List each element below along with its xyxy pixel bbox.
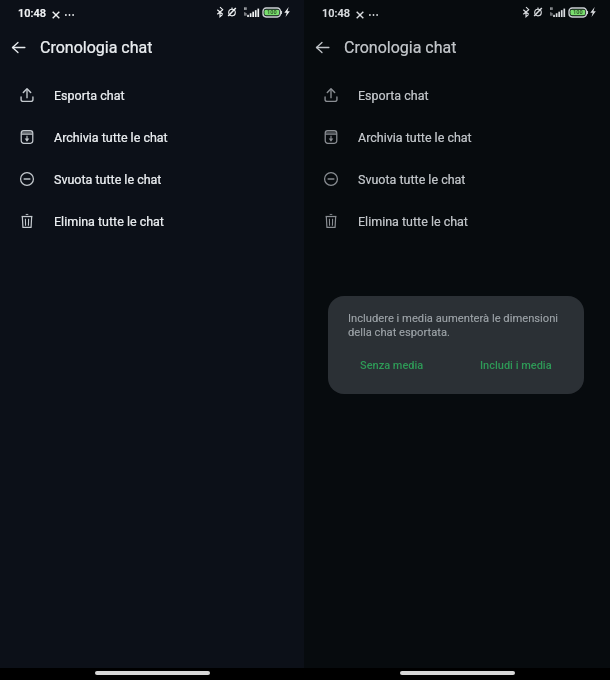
button[interactable]: Includi i media xyxy=(472,354,560,377)
button[interactable]: Senza media xyxy=(352,354,432,377)
staticText: Archivia tutte le chat xyxy=(54,130,168,145)
staticText: 100 xyxy=(267,9,277,16)
button[interactable]: Archivia tutte le chat xyxy=(0,116,304,158)
staticText: Svuota tutte le chat xyxy=(358,172,466,187)
button[interactable]: Elimina tutte le chat xyxy=(304,200,610,242)
staticText: Elimina tutte le chat xyxy=(54,214,164,229)
staticText: Senza media xyxy=(360,359,424,372)
button[interactable]: Svuota tutte le chat xyxy=(304,158,610,200)
staticText: Esporta chat xyxy=(54,88,125,103)
staticText: Elimina tutte le chat xyxy=(358,214,468,229)
button[interactable]: Archivia tutte le chat xyxy=(304,116,610,158)
staticText: Includi i media xyxy=(480,359,552,372)
button[interactable]: Svuota tutte le chat xyxy=(0,158,304,200)
staticText: Esporta chat xyxy=(358,88,429,103)
staticText: Cronologia chat xyxy=(344,38,457,57)
staticText: 10:48 xyxy=(18,7,46,20)
button[interactable]: Elimina tutte le chat xyxy=(0,200,304,242)
button[interactable]: Esporta chat xyxy=(304,74,610,116)
button[interactable]: Esporta chat xyxy=(0,74,304,116)
button[interactable]: Back xyxy=(5,34,32,61)
staticText: 100 xyxy=(573,9,583,16)
staticText: Svuota tutte le chat xyxy=(54,172,162,187)
staticText: 10:48 xyxy=(322,7,350,20)
staticText: Archivia tutte le chat xyxy=(358,130,472,145)
staticText: Includere i media aumenterà le dimension… xyxy=(348,312,564,338)
button[interactable]: Back xyxy=(309,34,336,61)
staticText: Cronologia chat xyxy=(40,38,153,57)
